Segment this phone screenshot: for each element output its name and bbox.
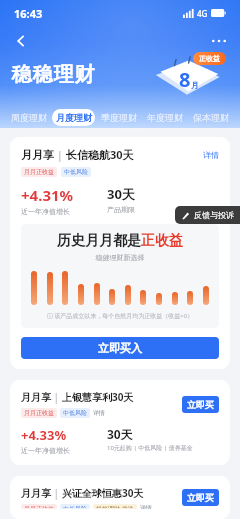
staticText: | bbox=[51, 390, 62, 404]
staticText: 详情 bbox=[140, 504, 152, 509]
staticText: 季度理财 bbox=[101, 112, 137, 123]
staticText: 稳健理财新选择 bbox=[21, 253, 219, 262]
staticText: 近一年净值增长 bbox=[21, 207, 70, 216]
staticText: 稳稳理财 bbox=[11, 62, 95, 87]
staticText: 30天 bbox=[107, 426, 133, 442]
staticText: 4G bbox=[197, 8, 208, 19]
staticText: 上银慧享利30天 bbox=[62, 390, 134, 404]
button[interactable]: 立即买 bbox=[182, 489, 219, 506]
staticText: 正收益 bbox=[199, 54, 220, 63]
staticText: 立即买 bbox=[187, 492, 214, 503]
staticText: | bbox=[54, 147, 66, 162]
staticText: 立即买入 bbox=[98, 341, 142, 355]
button[interactable]: 年度理财 bbox=[143, 109, 187, 126]
staticText: 月月享 bbox=[21, 148, 54, 162]
button[interactable]: 月月享 bbox=[10, 476, 230, 519]
staticText: 正收益 bbox=[141, 232, 183, 250]
button[interactable]: 周度理财 bbox=[7, 109, 50, 126]
staticText: | bbox=[51, 486, 62, 500]
staticText: +4.33% bbox=[21, 426, 67, 444]
button[interactable]: 月月享 bbox=[10, 137, 230, 369]
button[interactable]: 立即买入 bbox=[21, 337, 219, 359]
staticText: 中低风险 bbox=[64, 168, 88, 176]
staticText: 详情 bbox=[93, 409, 105, 417]
staticText: 产品期限 bbox=[107, 205, 135, 214]
button[interactable]: 立即买 bbox=[182, 396, 219, 413]
staticText: 月度理财 bbox=[56, 112, 92, 123]
button[interactable]: Back bbox=[8, 28, 34, 54]
staticText: 月 bbox=[191, 80, 199, 90]
staticText: 周度理财 bbox=[11, 112, 47, 123]
staticText: 近一年净值增长 bbox=[21, 446, 70, 455]
staticText: 年度理财 bbox=[147, 112, 183, 123]
staticText: 月月享 bbox=[21, 391, 51, 404]
staticText: 历史月月都是 bbox=[57, 232, 141, 250]
button[interactable]: 季度理财 bbox=[97, 109, 141, 126]
staticText: 长信稳航30天 bbox=[66, 147, 134, 162]
staticText: 中低风险 bbox=[63, 505, 87, 508]
button[interactable]: 详情 bbox=[93, 409, 105, 417]
button[interactable]: 详情 bbox=[140, 504, 152, 509]
staticText: 16:43 bbox=[14, 6, 43, 21]
button[interactable]: 反馈与投诉 bbox=[181, 210, 234, 220]
staticText: 详情 bbox=[203, 150, 219, 160]
button[interactable]: 月月享 bbox=[10, 380, 230, 465]
staticText: 立即买 bbox=[187, 399, 214, 410]
staticText: 30天 bbox=[107, 185, 135, 203]
staticText: ⓘ 该产品成立以来，每个自然月均为正收益（收益>0） bbox=[21, 312, 219, 320]
staticText: 中低风险 bbox=[63, 409, 87, 417]
staticText: 月月正收益 bbox=[24, 505, 54, 508]
button[interactable]: 保本理财 bbox=[189, 109, 233, 126]
button[interactable]: 详情 bbox=[203, 150, 219, 160]
staticText: 蚂蚁理财 优选 bbox=[96, 505, 134, 508]
staticText: 月月正收益 bbox=[24, 409, 54, 417]
staticText: +4.31% bbox=[21, 185, 74, 205]
staticText: 8 bbox=[179, 66, 191, 93]
staticText: 月月正收益 bbox=[24, 168, 54, 176]
staticText: 月月享 bbox=[21, 487, 51, 500]
staticText: 反馈与投诉 bbox=[194, 210, 234, 220]
button[interactable]: 月度理财 bbox=[52, 109, 95, 126]
staticText: 保本理财 bbox=[193, 112, 229, 123]
button[interactable]: More options bbox=[206, 28, 232, 54]
staticText: 兴证全球恒惠30天 bbox=[62, 486, 144, 500]
staticText: 10元起购 | 中低风险 | 债券基金 bbox=[107, 444, 193, 452]
